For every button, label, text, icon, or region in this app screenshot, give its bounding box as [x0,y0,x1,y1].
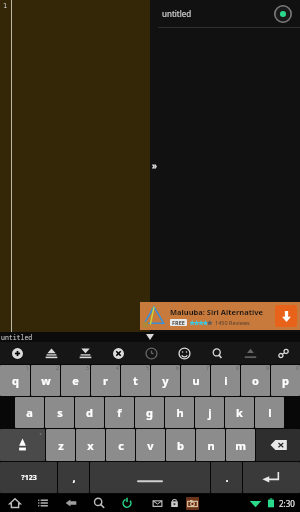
staticText: ?123 [21,473,37,483]
button[interactable]: s [45,397,74,428]
staticText: r [103,373,108,388]
button[interactable]: m [226,429,255,461]
button[interactable]: p [271,365,300,396]
button[interactable]: c [106,429,135,461]
staticText: 1 [26,365,29,372]
staticText: o [252,373,259,388]
button[interactable]: e [61,365,90,396]
staticText: q [12,373,19,388]
staticText: FREE [172,319,185,326]
staticText: 7 [206,365,209,372]
button[interactable]: b [166,429,195,461]
button[interactable]: a [15,397,44,428]
button[interactable]: z [46,429,75,461]
button[interactable]: l [255,397,284,428]
staticText: u [192,373,200,388]
staticText: , [72,470,76,485]
button[interactable] [152,498,163,509]
staticText: 5 [146,365,149,372]
staticText: 6 [176,365,179,372]
button[interactable]: d [75,397,104,428]
button[interactable]: Enter [243,462,300,493]
button[interactable]: k [225,397,254,428]
button[interactable]: Search [201,342,234,364]
button[interactable]: g [135,397,164,428]
staticText: x [87,438,94,453]
button[interactable]: Expand panel [148,158,160,172]
button[interactable]: n [196,429,225,461]
staticText: 1450 Reviews [215,319,250,326]
staticText: l [268,405,272,420]
button[interactable]: v [136,429,165,461]
button[interactable]: Save [34,342,68,364]
button[interactable]: o [241,365,270,396]
button[interactable]: x [76,429,105,461]
staticText: e [72,373,79,388]
button[interactable]: Shift [0,429,45,461]
staticText: k [236,405,243,420]
button[interactable]: Emoji [168,342,201,364]
staticText: 2 [56,365,59,372]
button[interactable]: Recent apps [36,496,50,510]
staticText: g [146,405,153,420]
staticText: i [224,373,228,388]
button[interactable] [186,497,199,510]
staticText: h [176,405,184,420]
button[interactable]: New [0,342,34,364]
button[interactable]: Install [275,305,297,327]
button[interactable]: Link [267,342,300,364]
button[interactable]: Space [90,462,210,493]
button[interactable]: Back [64,496,78,510]
staticText: c [118,438,124,453]
staticText: 2:30 [279,498,295,509]
staticText: a [26,405,33,420]
button[interactable]: q [0,365,30,396]
button[interactable]: i [211,365,240,396]
button[interactable]: , [58,462,89,493]
button[interactable]: Search [92,496,106,510]
staticText: j [208,405,212,420]
button[interactable] [169,498,180,509]
button[interactable]: j [195,397,224,428]
staticText: 9 [266,365,269,372]
button[interactable]: untitled [150,0,300,27]
button[interactable]: Upload [234,342,267,364]
staticText: » [152,160,157,171]
button[interactable]: r [91,365,120,396]
staticText: n [207,438,215,453]
button[interactable]: ?123 [0,462,57,493]
button[interactable]: w [31,365,60,396]
staticText: p [282,373,289,388]
button[interactable]: Backspace [256,429,300,461]
staticText: s [57,405,63,420]
button[interactable]: Close [102,342,135,364]
staticText: d [86,405,93,420]
button[interactable]: y [151,365,180,396]
button[interactable]: Open [68,342,102,364]
staticText: v [147,438,154,453]
staticText: t [133,373,138,388]
staticText: untitled [162,8,192,19]
staticText: Maluuba: Siri Alternative [170,307,263,317]
staticText: 8 [236,365,239,372]
button[interactable]: Rotation lock [120,496,134,510]
staticText: 1 [3,1,8,11]
button[interactable]: Home [8,496,22,510]
button[interactable]: Run [274,5,292,23]
button[interactable]: f [105,397,134,428]
button[interactable]: . [211,462,242,493]
button[interactable]: 1 [0,0,150,332]
staticText: w [41,373,51,388]
button[interactable]: u [181,365,210,396]
staticText: 3 [86,365,89,372]
button[interactable]: Maluuba: Siri Alternative [140,302,300,330]
staticText: 0 [296,365,299,372]
button[interactable]: h [165,397,194,428]
staticText: y [162,373,169,388]
staticText: b [177,438,184,453]
staticText: . [225,470,229,485]
staticText: z [58,438,64,453]
button[interactable]: t [121,365,150,396]
button[interactable]: History [135,342,168,364]
button[interactable]: Hide keyboard [146,334,154,340]
